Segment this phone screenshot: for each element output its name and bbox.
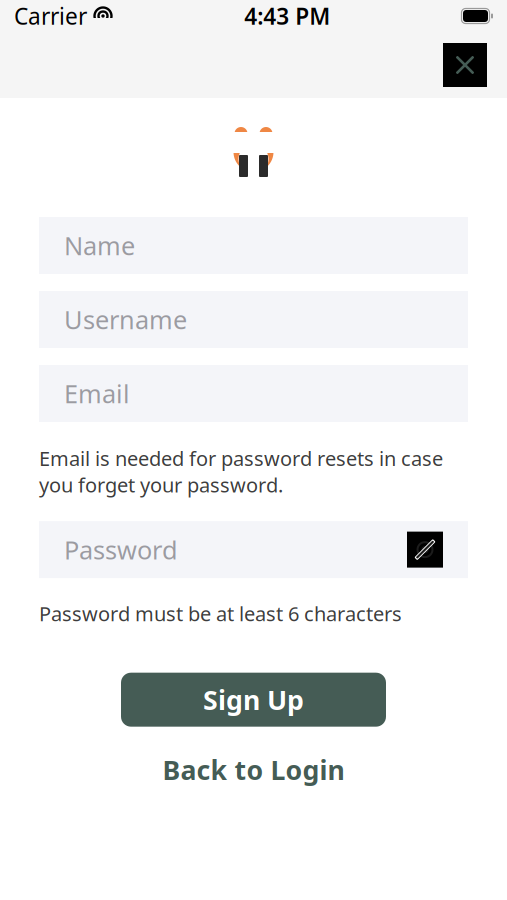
staticText: Email [64, 377, 130, 410]
staticText: Username [64, 303, 187, 336]
staticText: Carrier [14, 1, 87, 31]
staticText: Name [64, 229, 135, 262]
button[interactable]: Show password [407, 532, 443, 568]
staticText: Email is needed for password resets in c… [39, 445, 443, 498]
staticText [87, 7, 93, 25]
staticText: Sign Up [203, 682, 304, 717]
button[interactable]: Close [443, 43, 487, 87]
staticText: Back to Login [162, 752, 344, 787]
button[interactable]: Sign Up [121, 673, 386, 727]
button[interactable]: Back to Login [100, 748, 407, 792]
staticText: Password [64, 533, 178, 566]
staticText: 4:43 PM [244, 1, 330, 31]
staticText: Password must be at least 6 characters [39, 600, 402, 627]
